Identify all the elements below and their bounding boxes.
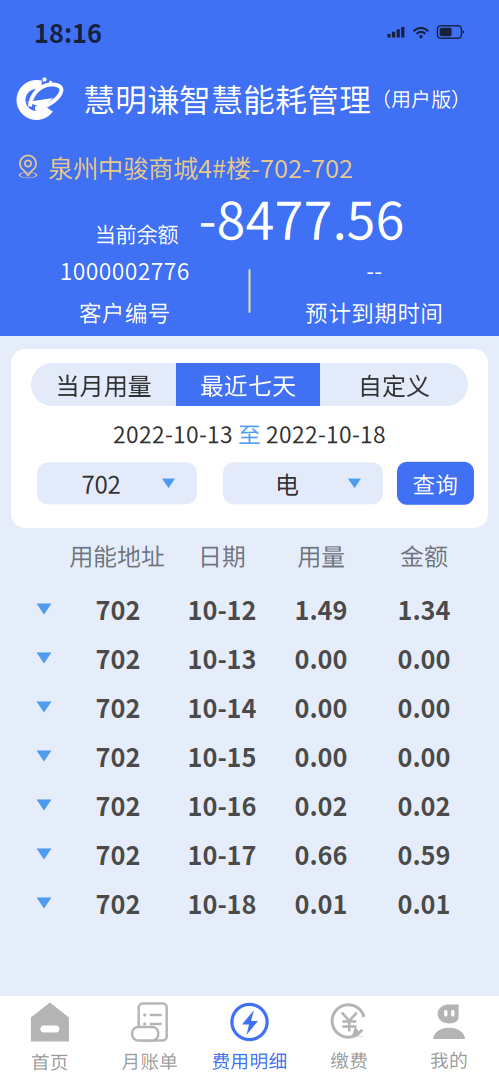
staticText: 10-12 <box>187 591 256 627</box>
staticText: 电 <box>275 466 299 501</box>
button[interactable]: 702 <box>0 631 499 680</box>
button[interactable]: 最近七天 <box>176 363 320 406</box>
staticText: 至 <box>238 417 261 450</box>
staticText: 702 <box>95 640 140 676</box>
staticText: 0.01 <box>397 885 450 921</box>
staticText: 自定义 <box>358 367 430 402</box>
staticText: 1.34 <box>397 591 450 627</box>
staticText: -8477.56 <box>198 179 404 255</box>
staticText: 客户编号 <box>79 295 171 328</box>
button[interactable]: 702 <box>0 876 499 925</box>
staticText: 我的 <box>430 1046 468 1073</box>
button[interactable]: 702 <box>0 778 499 827</box>
staticText: 泉州中骏商城4#楼-702-702 <box>48 149 353 185</box>
button[interactable]: 当月用量 <box>31 363 176 406</box>
staticText: 0.00 <box>397 738 450 774</box>
staticText: 1000002776 <box>60 254 190 286</box>
button[interactable]: 702 <box>37 462 197 504</box>
staticText: 查询 <box>412 467 458 500</box>
staticText: 0.00 <box>397 640 450 676</box>
staticText: 0.02 <box>397 787 450 823</box>
button[interactable]: 首页 <box>0 996 100 1080</box>
button[interactable]: 702 <box>0 680 499 729</box>
staticText: 10-14 <box>187 689 256 725</box>
staticText: 10-15 <box>187 738 256 774</box>
staticText: 最近七天 <box>200 367 296 402</box>
button[interactable]: 费用明细 <box>200 996 299 1080</box>
button[interactable]: 电 <box>223 462 383 504</box>
staticText: 2022-10-18 <box>266 417 386 450</box>
staticText: 0.00 <box>294 689 347 725</box>
staticText: 702 <box>95 836 140 872</box>
staticText: 当月用量 <box>55 367 151 402</box>
staticText: 18:16 <box>34 14 102 50</box>
staticText: 首页 <box>31 1047 69 1074</box>
staticText: 1.49 <box>294 591 347 627</box>
button[interactable]: 月账单 <box>100 996 200 1080</box>
staticText: 2022-10-13 <box>113 417 233 450</box>
staticText: 10-18 <box>187 885 256 921</box>
button[interactable]: 702 <box>0 729 499 778</box>
staticText: 702 <box>81 466 120 501</box>
button[interactable]: 查询 <box>397 462 474 505</box>
button[interactable]: 自定义 <box>320 363 468 406</box>
button[interactable]: 702 <box>0 582 499 631</box>
staticText: 0.59 <box>397 836 450 872</box>
staticText: 当前余额 <box>94 218 178 249</box>
button[interactable]: 702 <box>0 827 499 876</box>
staticText: 月账单 <box>121 1047 178 1074</box>
staticText: 预计到期时间 <box>305 295 443 328</box>
staticText: 702 <box>95 689 140 725</box>
staticText: 费用明细 <box>211 1046 287 1073</box>
staticText: 用能地址 <box>69 538 165 572</box>
button[interactable]: 我的 <box>399 996 499 1080</box>
staticText: 0.00 <box>397 689 450 725</box>
staticText: 用量 <box>297 538 345 572</box>
staticText: 10-17 <box>187 836 256 872</box>
staticText: 0.01 <box>294 885 347 921</box>
staticText: 702 <box>95 787 140 823</box>
staticText: -- <box>366 254 382 286</box>
staticText: 10-13 <box>187 640 256 676</box>
staticText: 0.00 <box>294 738 347 774</box>
staticText: 缴费 <box>330 1046 368 1073</box>
staticText: 702 <box>95 591 140 627</box>
staticText: 0.00 <box>294 640 347 676</box>
staticText: 日期 <box>198 538 246 572</box>
staticText: 10-16 <box>187 787 256 823</box>
staticText: 金额 <box>400 538 448 572</box>
staticText: 0.66 <box>294 836 347 872</box>
staticText: 702 <box>95 885 140 921</box>
staticText: 0.02 <box>294 787 347 823</box>
staticText: （用户版） <box>371 83 471 112</box>
staticText: 慧明谦智慧能耗管理 <box>83 75 371 121</box>
staticText: 702 <box>95 738 140 774</box>
button[interactable]: 缴费 <box>299 996 399 1080</box>
